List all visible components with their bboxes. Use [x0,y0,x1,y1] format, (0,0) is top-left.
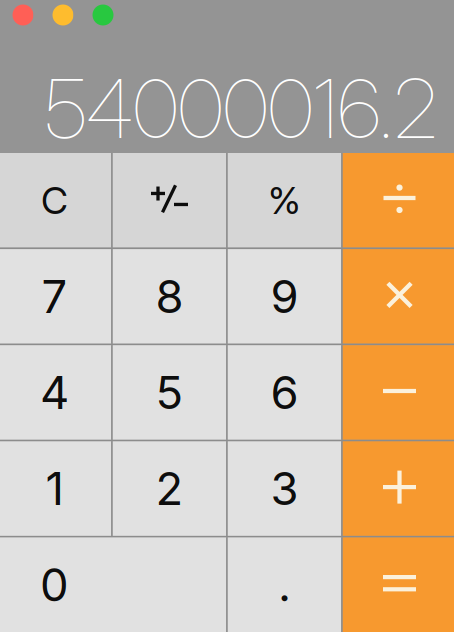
button[interactable]: Zoom [92,4,113,25]
staticText: % [268,178,301,223]
staticText: 0 [40,557,69,612]
button[interactable]: Operator [343,249,454,344]
staticText: 2 [155,461,183,516]
button[interactable]: Operator [343,345,454,440]
button[interactable]: 7 [0,249,111,344]
button[interactable]: 8 [113,249,226,344]
staticText: C [41,178,68,223]
button[interactable]: 2 [113,441,226,536]
button[interactable]: Operator [343,441,454,536]
staticText: 9 [270,269,298,324]
staticText: 4 [40,365,69,420]
button[interactable]: 1 [0,441,111,536]
staticText: 5 [155,365,183,420]
button[interactable]: 3 [228,441,341,536]
button[interactable]: Equals [343,537,454,632]
button[interactable]: 9 [228,249,341,344]
staticText: 8 [155,269,183,324]
staticText: 54000016.2 [45,59,438,158]
button[interactable]: 0 [0,537,226,632]
button[interactable]: 6 [228,345,341,440]
button[interactable]: Divide [343,153,454,248]
button[interactable]: Close [12,4,33,25]
staticText: 3 [270,461,298,516]
staticText: 6 [270,365,298,420]
staticText: 1 [45,461,63,516]
button[interactable]: % [228,153,341,248]
button[interactable]: 4 [0,345,111,440]
button[interactable]: Minimise [52,4,73,25]
button[interactable]: Plus or minus [113,153,226,248]
button[interactable]: 5 [113,345,226,440]
button[interactable]: C [0,153,111,248]
staticText: . [278,557,291,612]
staticText: 7 [41,269,67,324]
button[interactable]: . [228,537,341,632]
